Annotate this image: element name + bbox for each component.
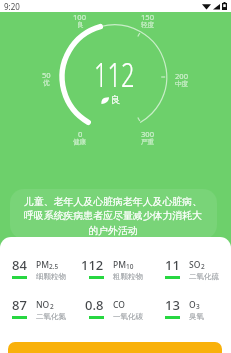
staticText: 50 (42, 70, 51, 80)
button[interactable]: 84 (0, 256, 76, 290)
button[interactable]: 112 (77, 256, 153, 290)
staticText: 112 (81, 256, 104, 270)
staticText: 10 (126, 262, 134, 271)
staticText: 87 (12, 296, 27, 310)
staticText: 优 (43, 79, 50, 87)
staticText: NO (36, 299, 50, 311)
staticText: CO (113, 299, 125, 311)
staticText: 300 (141, 129, 155, 139)
staticText: 中度 (175, 80, 189, 88)
button[interactable]: 87 (0, 296, 76, 330)
staticText: 良 (111, 94, 121, 106)
staticText: 良 (77, 21, 84, 29)
staticText: 2 (201, 262, 205, 271)
staticText: 健康 (73, 138, 87, 146)
staticText: SO (189, 259, 201, 271)
staticText: 一氧化碳 (113, 312, 143, 321)
button[interactable]: 13 (153, 296, 229, 330)
staticText: 儿童、老年人及心脏病老年人及心脏病、呼吸系统疾病患者应尽量减少体力消耗大的户外活… (22, 195, 204, 237)
staticText: 粗颗粒物 (113, 272, 143, 281)
staticText: 二氧化硫 (189, 272, 219, 281)
staticText: 臭氧 (189, 312, 204, 321)
staticText: 轻度 (141, 21, 155, 29)
staticText: 3 (196, 302, 200, 311)
staticText: 细颗粒物 (36, 272, 66, 281)
staticText: 严重 (141, 138, 155, 146)
staticText: 2 (50, 302, 54, 311)
staticText: 9:20 (4, 1, 20, 12)
staticText: 200 (175, 71, 189, 81)
staticText: 0 (78, 129, 83, 139)
staticText: 0.8 (85, 296, 104, 310)
staticText: PM (113, 259, 126, 271)
staticText: PM (36, 259, 49, 271)
staticText: 2.5 (49, 262, 59, 271)
staticText: 84 (12, 256, 27, 270)
staticText: 二氧化氮 (36, 312, 66, 321)
staticText: 13 (165, 296, 180, 310)
staticText: 112 (94, 52, 135, 97)
button[interactable]: 11 (153, 256, 229, 290)
button[interactable]: 0.8 (77, 296, 153, 330)
staticText: 150 (141, 12, 155, 22)
button[interactable]: More (8, 342, 222, 353)
staticText: 100 (73, 12, 87, 22)
staticText: O (189, 299, 196, 311)
staticText: 11 (165, 256, 180, 270)
